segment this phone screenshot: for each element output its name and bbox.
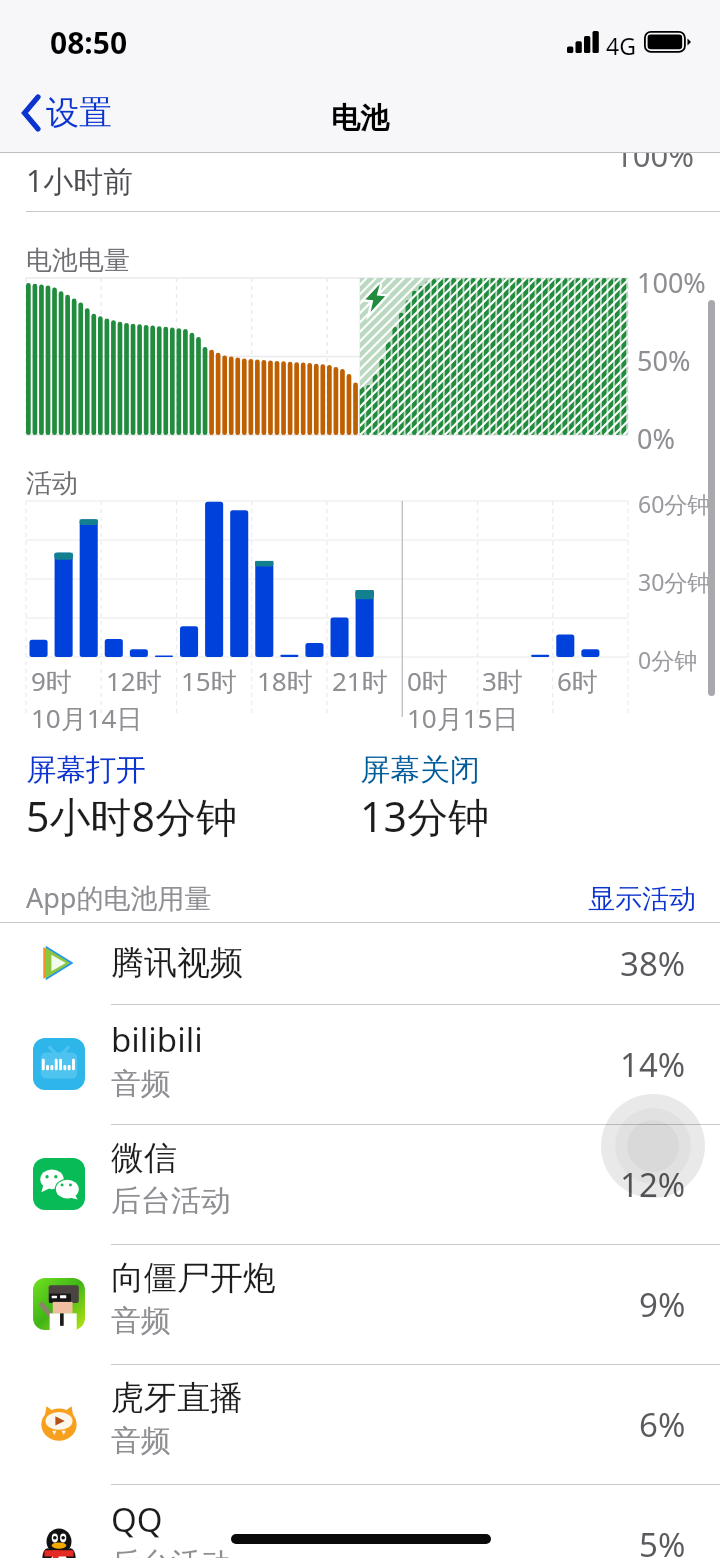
staticText: 腾讯视频 xyxy=(111,942,243,984)
staticText: bilibili xyxy=(111,1017,203,1062)
staticText: 音频 xyxy=(111,1422,171,1460)
button[interactable]: 微信 xyxy=(0,1124,720,1244)
staticText: 3时 xyxy=(482,663,523,699)
staticText: 100% xyxy=(637,264,706,301)
staticText: 30分钟 xyxy=(638,566,711,597)
staticText: 21时 xyxy=(332,663,388,699)
staticText: 10月15日 xyxy=(407,700,519,736)
button[interactable]: 向僵尸开炮 xyxy=(0,1244,720,1364)
staticText: 音频 xyxy=(111,1065,171,1103)
staticText: 5% xyxy=(639,1522,686,1558)
staticText: 电池 xyxy=(331,100,389,137)
staticText: 08:50 xyxy=(50,22,128,63)
staticText: 18时 xyxy=(257,663,313,699)
staticText: 0分钟 xyxy=(638,644,698,675)
staticText: 15时 xyxy=(181,663,237,699)
staticText: 12时 xyxy=(106,663,162,699)
staticText: 6% xyxy=(639,1402,686,1447)
staticText: 50% xyxy=(637,342,691,379)
button[interactable]: 屏幕打开 xyxy=(26,751,146,789)
staticText: 向僵尸开炮 xyxy=(111,1257,276,1299)
staticText: 显示活动 xyxy=(588,882,696,916)
staticText: 后台活动 xyxy=(111,1182,231,1220)
staticText: 13分钟 xyxy=(360,788,489,844)
staticText: 活动 xyxy=(26,467,78,500)
staticText: QQ xyxy=(111,1497,163,1542)
staticText: 60分钟 xyxy=(638,488,711,519)
button[interactable]: 显示活动 xyxy=(580,876,704,922)
staticText: 0时 xyxy=(407,663,448,699)
staticText: 38% xyxy=(620,941,686,986)
staticText: 10月14日 xyxy=(31,700,143,736)
staticText: 微信 xyxy=(111,1137,177,1179)
staticText: App的电池用量 xyxy=(26,879,212,916)
staticText: 音频 xyxy=(111,1302,171,1340)
staticText: 1小时前 xyxy=(26,160,134,201)
staticText: 9时 xyxy=(31,663,72,699)
staticText: 14% xyxy=(620,1042,686,1087)
staticText: 6时 xyxy=(557,663,598,699)
staticText: 4G xyxy=(606,30,636,61)
staticText: 电池电量 xyxy=(26,244,130,277)
staticText: 虎牙直播 xyxy=(111,1377,243,1419)
button[interactable]: 屏幕关闭 xyxy=(360,751,480,789)
staticText: 9% xyxy=(639,1282,686,1327)
staticText: 0% xyxy=(637,420,675,457)
button[interactable]: bilibili xyxy=(0,1004,720,1124)
staticText: 12% xyxy=(620,1162,686,1207)
staticText: 5小时8分钟 xyxy=(26,788,237,844)
staticText: 100% xyxy=(615,134,694,176)
staticText: 后台活动 xyxy=(111,1545,231,1558)
button[interactable]: 设置 xyxy=(16,88,118,138)
button[interactable]: 腾讯视频 xyxy=(0,922,720,1004)
button[interactable]: QQ xyxy=(0,1484,720,1558)
button[interactable]: 虎牙直播 xyxy=(0,1364,720,1484)
staticText: 设置 xyxy=(46,92,112,134)
